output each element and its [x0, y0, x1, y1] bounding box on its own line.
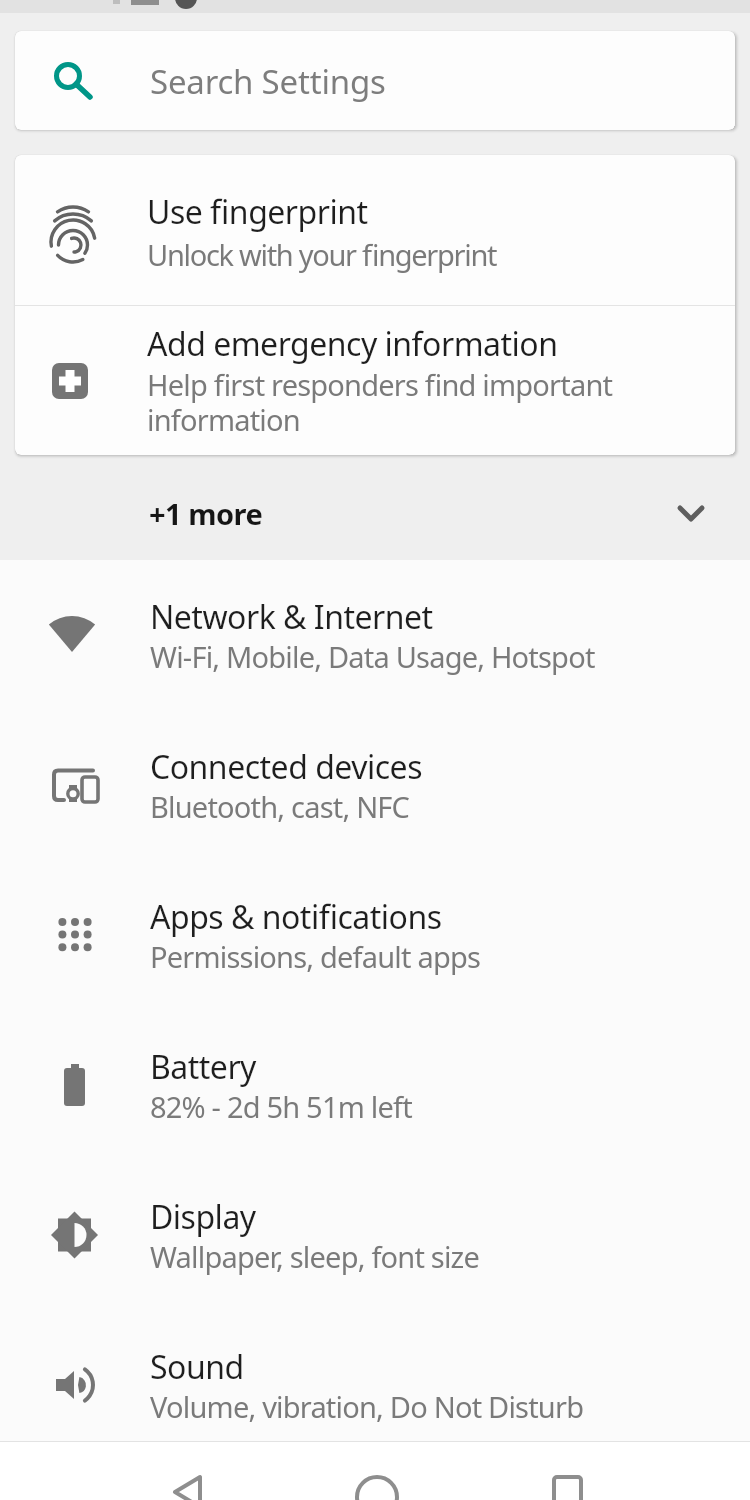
button[interactable]: +1 more: [0, 455, 750, 560]
staticText: Display: [150, 1195, 256, 1239]
staticText: Connected devices: [150, 745, 422, 789]
staticText: Add emergency information: [147, 322, 558, 366]
staticText: Wallpaper, sleep, font size: [150, 1237, 480, 1276]
staticText: Wi-Fi, Mobile, Data Usage, Hotspot: [150, 637, 595, 676]
button[interactable]: [130, 1441, 250, 1500]
button[interactable]: Connected devices: [0, 710, 750, 860]
staticText: 82% - 2d 5h 51m left: [150, 1087, 412, 1126]
staticText: Apps & notifications: [150, 895, 442, 939]
staticText: Battery: [150, 1045, 256, 1089]
staticText: Use fingerprint: [147, 190, 368, 234]
staticText: Volume, vibration, Do Not Disturb: [150, 1387, 584, 1426]
staticText: Sound: [150, 1345, 244, 1389]
staticText: Search Settings: [150, 59, 386, 104]
staticText: Network & Internet: [150, 595, 433, 639]
staticText: Help first responders find important inf…: [147, 365, 613, 440]
button[interactable]: Battery: [0, 1010, 750, 1160]
button[interactable]: [317, 1441, 437, 1500]
button[interactable]: [504, 1441, 624, 1500]
button[interactable]: Network & Internet: [0, 560, 750, 710]
button[interactable]: Use fingerprint: [15, 155, 735, 305]
staticText: Unlock with your fingerprint: [147, 235, 497, 274]
button[interactable]: Display: [0, 1160, 750, 1310]
button[interactable]: Search Settings: [15, 31, 735, 130]
staticText: Bluetooth, cast, NFC: [150, 787, 410, 826]
button[interactable]: Sound: [0, 1310, 750, 1460]
button[interactable]: Add emergency information: [15, 305, 735, 455]
button[interactable]: Apps & notifications: [0, 860, 750, 1010]
staticText: +1 more: [149, 494, 263, 533]
staticText: Permissions, default apps: [150, 937, 481, 976]
